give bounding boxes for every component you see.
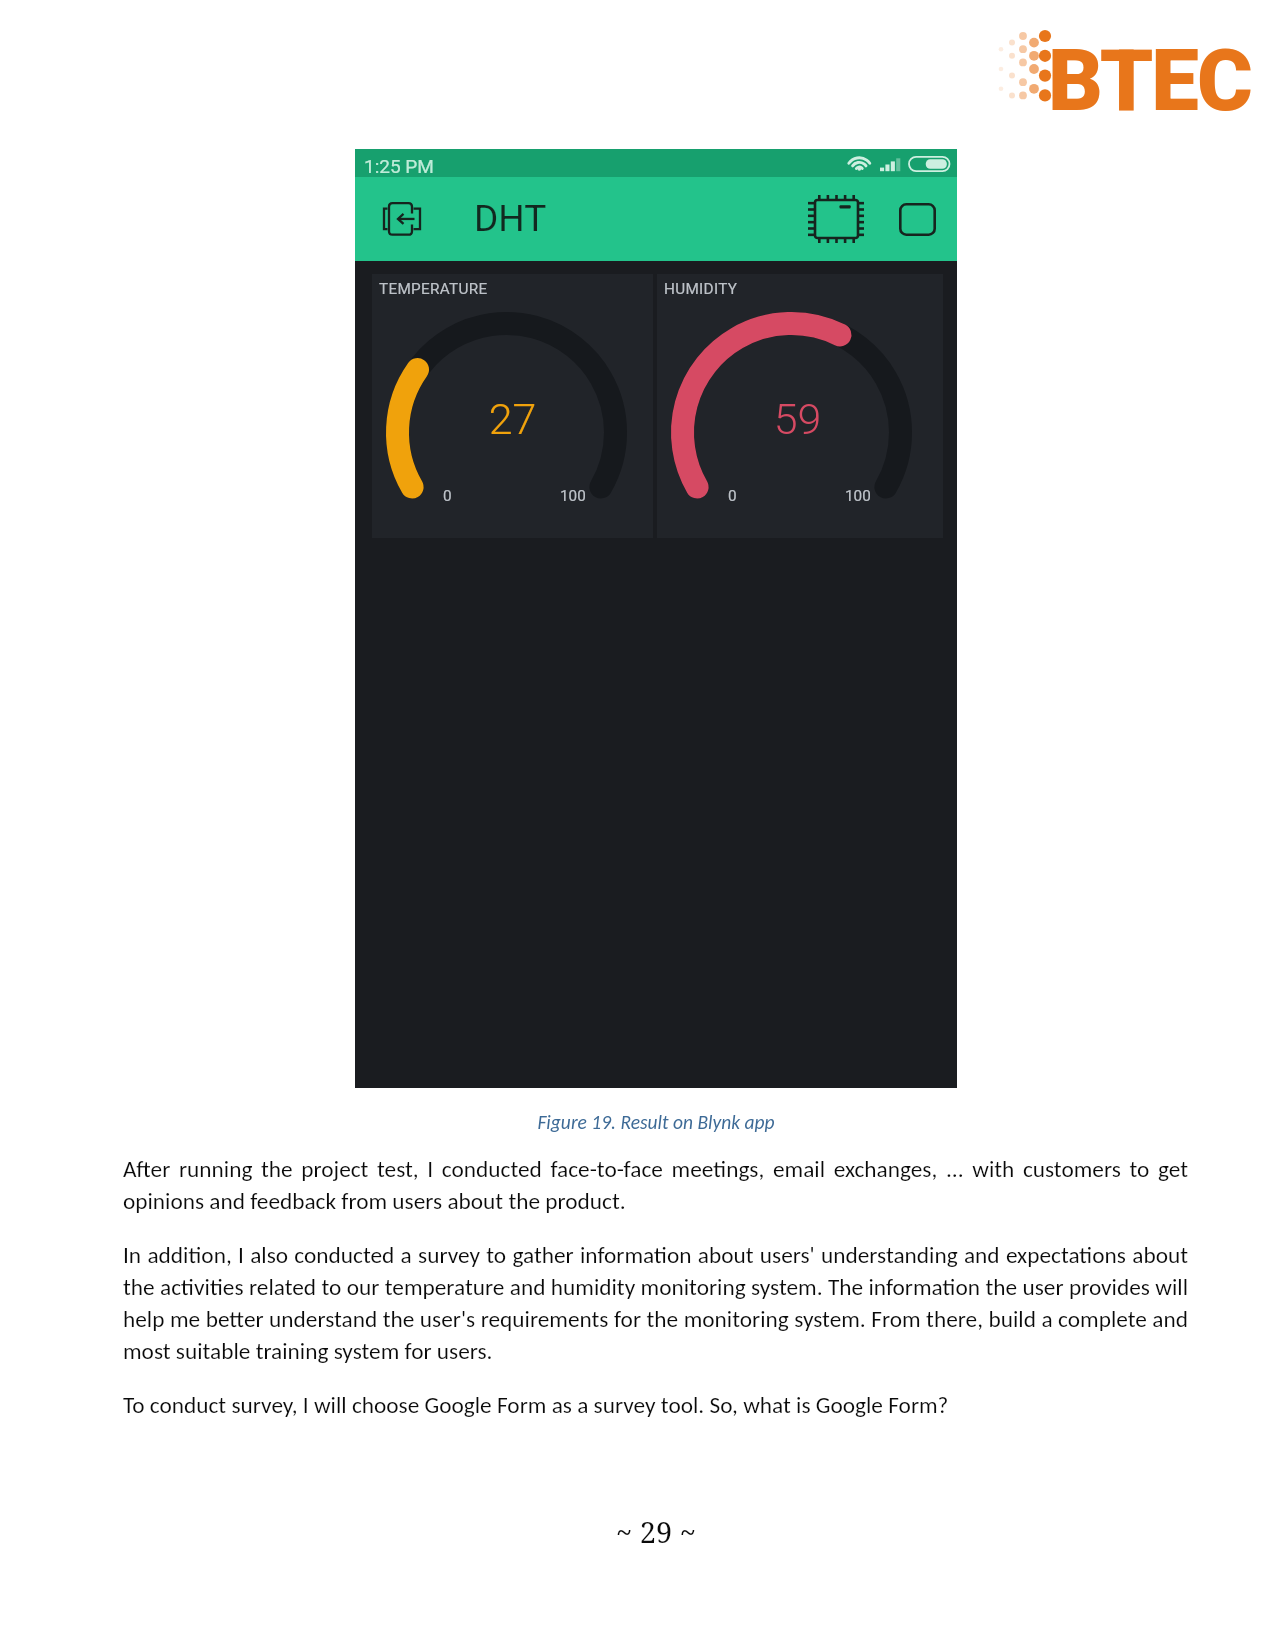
staticText: 100 [845,487,871,505]
staticText: 59 [757,394,838,444]
staticText: After running the project test, I conduc… [123,1155,1188,1215]
staticText: 0 [728,487,737,505]
button[interactable]: Back [375,190,429,248]
staticText: 1:25 PM [364,155,434,177]
button[interactable]: TEMPERATURE [372,274,653,538]
staticText: TEMPERATURE [379,280,488,298]
staticText: DHT [474,197,547,240]
staticText: 27 [472,394,553,444]
button[interactable]: HUMIDITY [657,274,943,538]
staticText: BTEC [1048,31,1251,131]
staticText: HUMIDITY [664,280,738,298]
staticText: 100 [560,487,586,505]
staticText: In addition, I also conducted a survey t… [123,1241,1188,1365]
staticText: To conduct survey, I will choose Google … [123,1391,949,1419]
staticText: 0 [443,487,452,505]
staticText: Figure 19. Result on Blynk app [356,1110,956,1134]
button[interactable]: Stop [892,193,942,245]
button[interactable]: Device [805,191,867,247]
staticText: ~ 29 ~ [356,1512,956,1551]
